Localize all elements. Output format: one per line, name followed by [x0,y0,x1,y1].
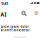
staticText: Lorem ipsum dolor sit amet consectetur [0,25,29,32]
button[interactable]: Search [21,10,27,16]
button[interactable]: Profile [34,11,38,15]
button[interactable]: Menu [0,11,6,18]
staticText: AI [0,11,6,18]
staticText: 9:41 [1,1,8,6]
